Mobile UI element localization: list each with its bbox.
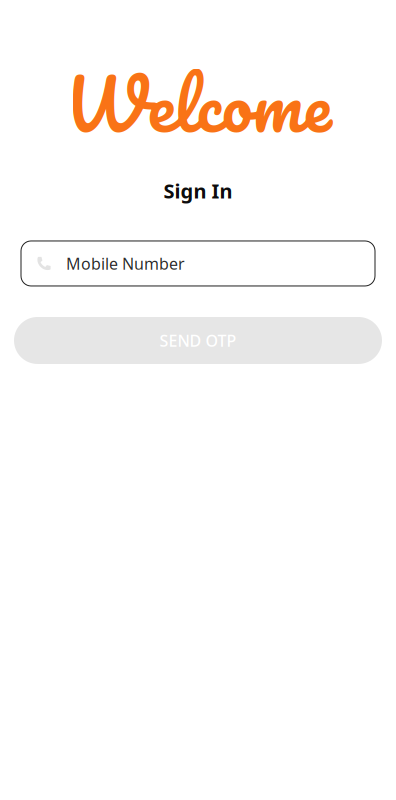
staticText: Sign In [163,177,232,204]
staticText: SEND OTP [159,330,236,351]
button[interactable]: SEND OTP [14,317,382,364]
staticText: Welcome [64,44,331,163]
staticText: Mobile Number [66,253,185,274]
